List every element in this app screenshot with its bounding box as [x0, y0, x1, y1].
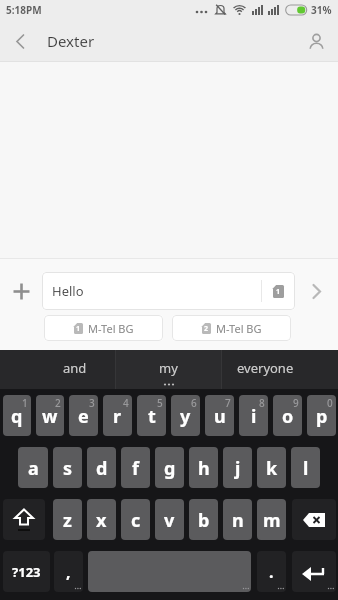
staticText: c — [131, 508, 141, 533]
staticText: e — [78, 404, 89, 429]
staticText: Hello — [52, 282, 84, 300]
button[interactable]: k — [257, 447, 286, 488]
button[interactable]: w — [36, 395, 64, 436]
button[interactable] — [0, 272, 42, 310]
staticText: p — [316, 404, 328, 429]
button[interactable] — [3, 499, 45, 540]
staticText: everyone — [237, 359, 294, 377]
staticText: u — [214, 404, 226, 429]
button[interactable]: f — [121, 447, 150, 488]
button[interactable]: j — [223, 447, 252, 488]
staticText: b — [198, 508, 210, 533]
button[interactable]: and — [0, 350, 116, 389]
staticText: y — [180, 404, 191, 429]
staticText: i — [251, 404, 257, 429]
staticText: M-Tel BG — [216, 321, 262, 336]
button[interactable] — [0, 20, 40, 62]
button[interactable]: , — [54, 551, 83, 592]
button[interactable]: p — [307, 395, 336, 436]
staticText: 2 — [55, 396, 61, 410]
button[interactable] — [294, 20, 338, 62]
staticText: 1 — [22, 396, 28, 410]
staticText: m — [263, 508, 281, 533]
staticText: h — [198, 456, 210, 481]
button[interactable]: z — [53, 499, 82, 540]
button[interactable]: x — [87, 499, 116, 540]
staticText: s — [63, 456, 73, 481]
button[interactable] — [295, 272, 338, 310]
button[interactable]: . — [257, 551, 286, 592]
staticText: and — [63, 359, 87, 377]
staticText: 8 — [259, 396, 265, 410]
button[interactable]: i — [239, 395, 268, 436]
button[interactable]: b — [189, 499, 218, 540]
button[interactable]: q — [3, 395, 31, 436]
staticText: , — [66, 561, 71, 583]
button[interactable]: 1 — [44, 315, 163, 341]
staticText: Dexter — [47, 31, 95, 51]
button[interactable] — [292, 499, 336, 540]
button[interactable]: d — [87, 447, 116, 488]
button[interactable]: y — [171, 395, 200, 436]
staticText: 1 — [76, 324, 81, 334]
staticText: 2 — [204, 324, 209, 334]
staticText: 5 — [157, 396, 163, 410]
staticText: a — [28, 456, 39, 481]
staticText: 7 — [225, 396, 231, 410]
staticText: 5:18PM — [6, 3, 42, 17]
staticText: w — [42, 404, 58, 429]
staticText: 4 — [123, 396, 129, 410]
button[interactable]: g — [155, 447, 184, 488]
button[interactable]: a — [18, 447, 48, 488]
button[interactable]: 2 — [172, 315, 291, 341]
button[interactable]: ?123 — [3, 551, 50, 592]
staticText: 6 — [191, 396, 197, 410]
staticText: 1 — [276, 287, 281, 297]
staticText: v — [164, 508, 175, 533]
button[interactable]: u — [205, 395, 234, 436]
button[interactable]: r — [103, 395, 132, 436]
staticText: o — [282, 404, 294, 429]
staticText: my — [159, 359, 178, 377]
button[interactable]: my — [116, 350, 221, 389]
staticText: 0 — [327, 396, 333, 410]
staticText: q — [11, 404, 23, 429]
button[interactable]: n — [223, 499, 252, 540]
staticText: j — [235, 456, 241, 481]
staticText: r — [113, 404, 122, 429]
button[interactable]: Hello — [42, 272, 295, 310]
button[interactable] — [292, 551, 336, 592]
button[interactable]: m — [257, 499, 286, 540]
button[interactable]: everyone — [221, 350, 338, 389]
staticText: 3 — [89, 396, 95, 410]
staticText: t — [148, 404, 156, 429]
staticText: ?123 — [12, 563, 41, 581]
button[interactable]: t — [137, 395, 166, 436]
staticText: 9 — [293, 396, 299, 410]
staticText: d — [96, 456, 108, 481]
staticText: k — [266, 456, 278, 481]
staticText: n — [232, 508, 244, 533]
button[interactable]: l — [291, 447, 320, 488]
staticText: . — [269, 561, 274, 583]
button[interactable]: e — [69, 395, 98, 436]
staticText: M-Tel BG — [88, 321, 134, 336]
staticText: z — [63, 508, 72, 533]
button[interactable]: s — [53, 447, 82, 488]
staticText: g — [164, 456, 176, 481]
button[interactable]: h — [189, 447, 218, 488]
staticText: x — [96, 508, 107, 533]
staticText: 31% — [311, 3, 332, 17]
button[interactable]: c — [121, 499, 150, 540]
staticText: l — [303, 456, 309, 481]
button[interactable]: o — [273, 395, 302, 436]
button[interactable]: v — [155, 499, 184, 540]
staticText: f — [132, 456, 139, 481]
